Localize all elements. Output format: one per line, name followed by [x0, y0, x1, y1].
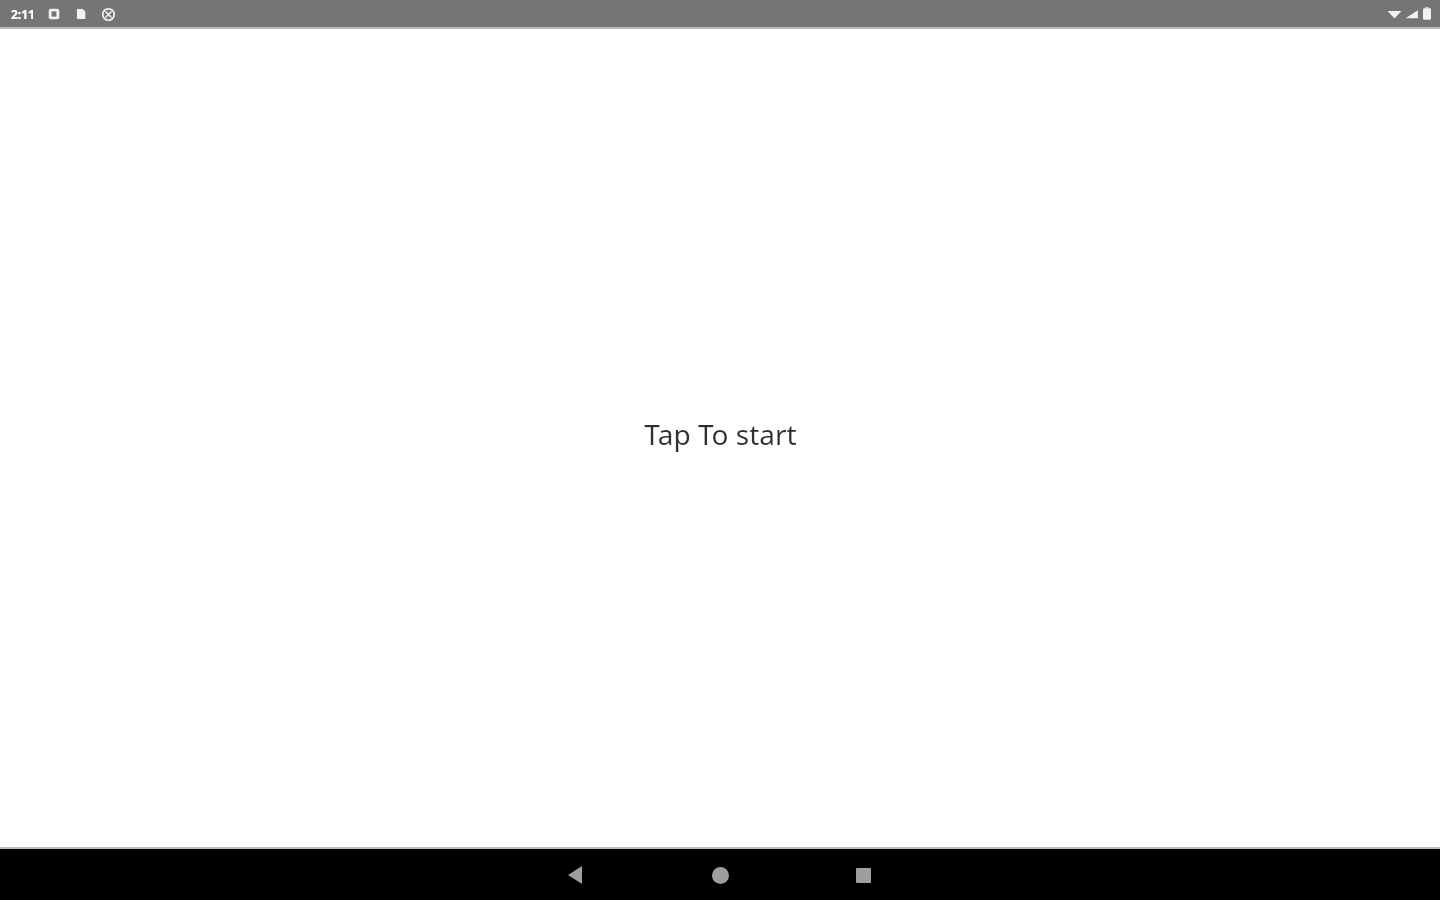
button[interactable]: Recent apps	[839, 851, 887, 899]
button[interactable]: Tap To start	[0, 29, 1440, 847]
button[interactable]: Back	[551, 851, 599, 899]
button[interactable]: Home	[696, 851, 744, 899]
staticText: 2:11	[11, 6, 35, 22]
staticText: Tap To start	[644, 415, 797, 453]
